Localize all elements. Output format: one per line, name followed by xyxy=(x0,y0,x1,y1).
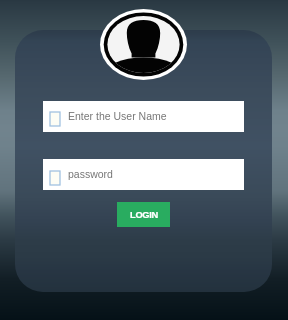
button[interactable]: LOGIN xyxy=(117,202,170,227)
staticText: password xyxy=(68,168,113,180)
other: Profile avatar xyxy=(100,9,187,80)
staticText: LOGIN xyxy=(130,210,158,220)
button[interactable]: password xyxy=(43,159,244,190)
staticText: Enter the User Name xyxy=(68,110,167,122)
button[interactable]: Enter the User Name xyxy=(43,101,244,132)
